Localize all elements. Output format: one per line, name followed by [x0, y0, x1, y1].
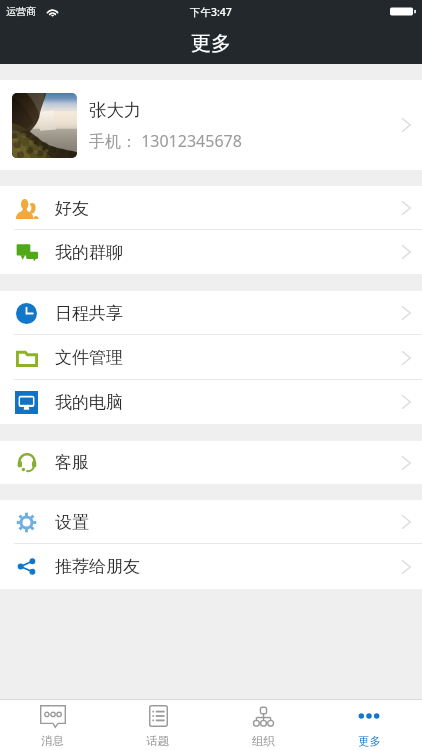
staticText: 组织: [252, 734, 275, 748]
staticText: 下午3:47: [190, 5, 232, 19]
button[interactable]: 话题: [105, 700, 210, 750]
staticText: 运营商: [6, 5, 36, 18]
button[interactable]: 客服: [0, 441, 422, 484]
button[interactable]: 推荐给朋友: [0, 544, 422, 589]
button[interactable]: 好友: [0, 186, 422, 230]
staticText: 更多: [358, 734, 381, 748]
button[interactable]: 设置: [0, 500, 422, 544]
staticText: 日程共享: [55, 303, 401, 324]
staticText: 话题: [146, 734, 169, 748]
staticText: 设置: [55, 512, 401, 533]
button[interactable]: 我的群聊: [0, 230, 422, 274]
button[interactable]: 我的电脑: [0, 380, 422, 424]
staticText: 我的电脑: [55, 392, 401, 413]
staticText: 张大力: [89, 99, 142, 121]
button[interactable]: 组织: [210, 700, 316, 750]
button[interactable]: 消息: [0, 700, 105, 750]
staticText: 手机： 13012345678: [89, 130, 242, 152]
staticText: 消息: [41, 734, 64, 748]
staticText: 客服: [55, 452, 401, 473]
staticText: 更多: [191, 31, 231, 56]
button[interactable]: 更多: [316, 700, 422, 750]
staticText: 好友: [55, 198, 401, 219]
button[interactable]: 文件管理: [0, 335, 422, 380]
staticText: 文件管理: [55, 347, 401, 368]
staticText: 我的群聊: [55, 242, 401, 263]
button[interactable]: 张大力: [0, 80, 422, 170]
button[interactable]: 日程共享: [0, 291, 422, 335]
staticText: 推荐给朋友: [55, 556, 401, 577]
